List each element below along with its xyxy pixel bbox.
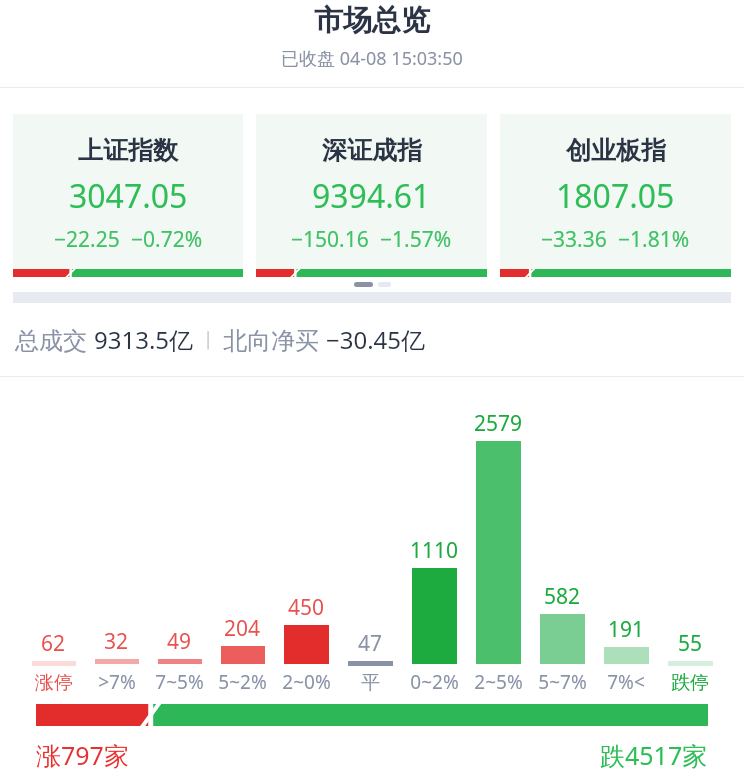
staticText: 上证指数 bbox=[78, 135, 178, 166]
staticText: −33.36 bbox=[541, 225, 607, 254]
staticText: 深证成指 bbox=[322, 135, 422, 166]
staticText: >7% bbox=[98, 669, 136, 695]
staticText: −1.57% bbox=[380, 225, 452, 254]
staticText: 跌4517家 bbox=[600, 738, 708, 772]
staticText: 市场总览 bbox=[314, 2, 430, 39]
button[interactable]: 55 bbox=[658, 629, 722, 695]
staticText: 丨 bbox=[194, 327, 223, 353]
staticText: 32 bbox=[104, 627, 129, 656]
button[interactable]: 49 bbox=[148, 627, 211, 695]
button[interactable]: 1110 bbox=[402, 536, 466, 695]
staticText: 450 bbox=[288, 593, 325, 622]
button[interactable]: 47 bbox=[338, 629, 402, 695]
staticText: 47 bbox=[358, 629, 383, 658]
button[interactable]: 总成交 bbox=[0, 303, 744, 376]
staticText: 191 bbox=[608, 615, 645, 644]
staticText: 北向净买 bbox=[223, 323, 326, 356]
staticText: 总成交 bbox=[15, 323, 94, 356]
button[interactable]: 2579 bbox=[466, 409, 530, 695]
staticText: 3047.05 bbox=[69, 174, 188, 218]
staticText: −150.16 bbox=[291, 225, 369, 254]
staticText: 平 bbox=[361, 671, 380, 695]
staticText: 0~2% bbox=[410, 669, 459, 695]
staticText: 1807.05 bbox=[556, 174, 675, 218]
staticText: 创业板指 bbox=[566, 135, 666, 166]
staticText: 涨停 bbox=[35, 671, 73, 695]
staticText: 49 bbox=[167, 627, 192, 656]
staticText: 204 bbox=[224, 614, 261, 643]
staticText: 582 bbox=[544, 582, 581, 611]
staticText: 62 bbox=[41, 629, 66, 658]
button[interactable]: 62 bbox=[22, 629, 85, 695]
staticText: 1110 bbox=[410, 536, 459, 565]
staticText: 5~2% bbox=[218, 669, 267, 695]
button[interactable]: 450 bbox=[274, 593, 338, 695]
button[interactable]: 582 bbox=[530, 582, 594, 695]
staticText: 9394.61 bbox=[312, 174, 431, 218]
button[interactable]: 191 bbox=[594, 615, 658, 695]
staticText: 涨797家 bbox=[36, 738, 129, 772]
staticText: 已收盘 04-08 15:03:50 bbox=[281, 46, 463, 71]
button[interactable]: 204 bbox=[211, 614, 274, 695]
staticText: 55 bbox=[678, 629, 703, 658]
staticText: 9313.5亿 bbox=[94, 323, 194, 356]
staticText: 7~5% bbox=[155, 669, 204, 695]
staticText: −1.81% bbox=[618, 225, 690, 254]
staticText: −0.72% bbox=[131, 225, 203, 254]
staticText: −22.25 bbox=[54, 225, 120, 254]
staticText: 2~0% bbox=[282, 669, 331, 695]
staticText: 跌停 bbox=[671, 671, 709, 695]
staticText: 2579 bbox=[474, 409, 523, 438]
button[interactable]: 上证指数 bbox=[13, 114, 243, 277]
staticText: 7%< bbox=[607, 669, 645, 695]
staticText: 2~5% bbox=[474, 669, 523, 695]
button[interactable]: 32 bbox=[85, 627, 148, 695]
staticText: 5~7% bbox=[538, 669, 587, 695]
button[interactable]: 深证成指 bbox=[256, 114, 487, 277]
button[interactable]: 创业板指 bbox=[500, 114, 731, 277]
staticText: −30.45亿 bbox=[326, 323, 426, 356]
